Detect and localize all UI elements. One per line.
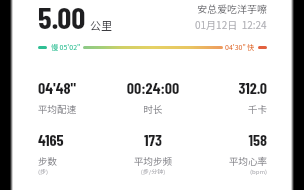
- staticText: 安总爱吃洋芋嚓: [197, 1, 267, 15]
- button[interactable]: 00:24:00: [115, 81, 191, 125]
- staticText: (步): [38, 167, 115, 176]
- staticText: 千卡: [191, 102, 267, 116]
- staticText: 00:24:00: [115, 78, 191, 97]
- staticText: 04'30" 快: [225, 42, 255, 52]
- button[interactable]: 158: [191, 133, 267, 177]
- button[interactable]: Pace range: [38, 42, 267, 52]
- staticText: 步数: [38, 154, 115, 168]
- button[interactable]: 173: [115, 133, 191, 177]
- staticText: 平均心率: [191, 154, 267, 168]
- button[interactable]: 4165: [38, 133, 115, 177]
- staticText: 平均步频: [115, 154, 191, 168]
- staticText: 158: [191, 130, 267, 149]
- button[interactable]: 312.0: [191, 81, 267, 125]
- staticText: 01月12日 12:24: [195, 17, 267, 31]
- staticText: (bpm): [191, 167, 267, 176]
- staticText: 312.0: [191, 78, 267, 97]
- button[interactable]: 04'48": [38, 81, 115, 125]
- staticText: 173: [115, 130, 191, 149]
- staticText: 时长: [115, 102, 191, 116]
- staticText: 04'48": [38, 78, 115, 97]
- staticText: 5.00: [38, 0, 86, 35]
- staticText: (步/分钟): [115, 167, 191, 176]
- staticText: 公里: [90, 17, 112, 33]
- staticText: 4165: [38, 130, 115, 149]
- button[interactable]: 安总爱吃洋芋嚓: [38, 1, 267, 31]
- staticText: 慢 05'02": [51, 42, 81, 52]
- staticText: 平均配速: [38, 102, 115, 116]
